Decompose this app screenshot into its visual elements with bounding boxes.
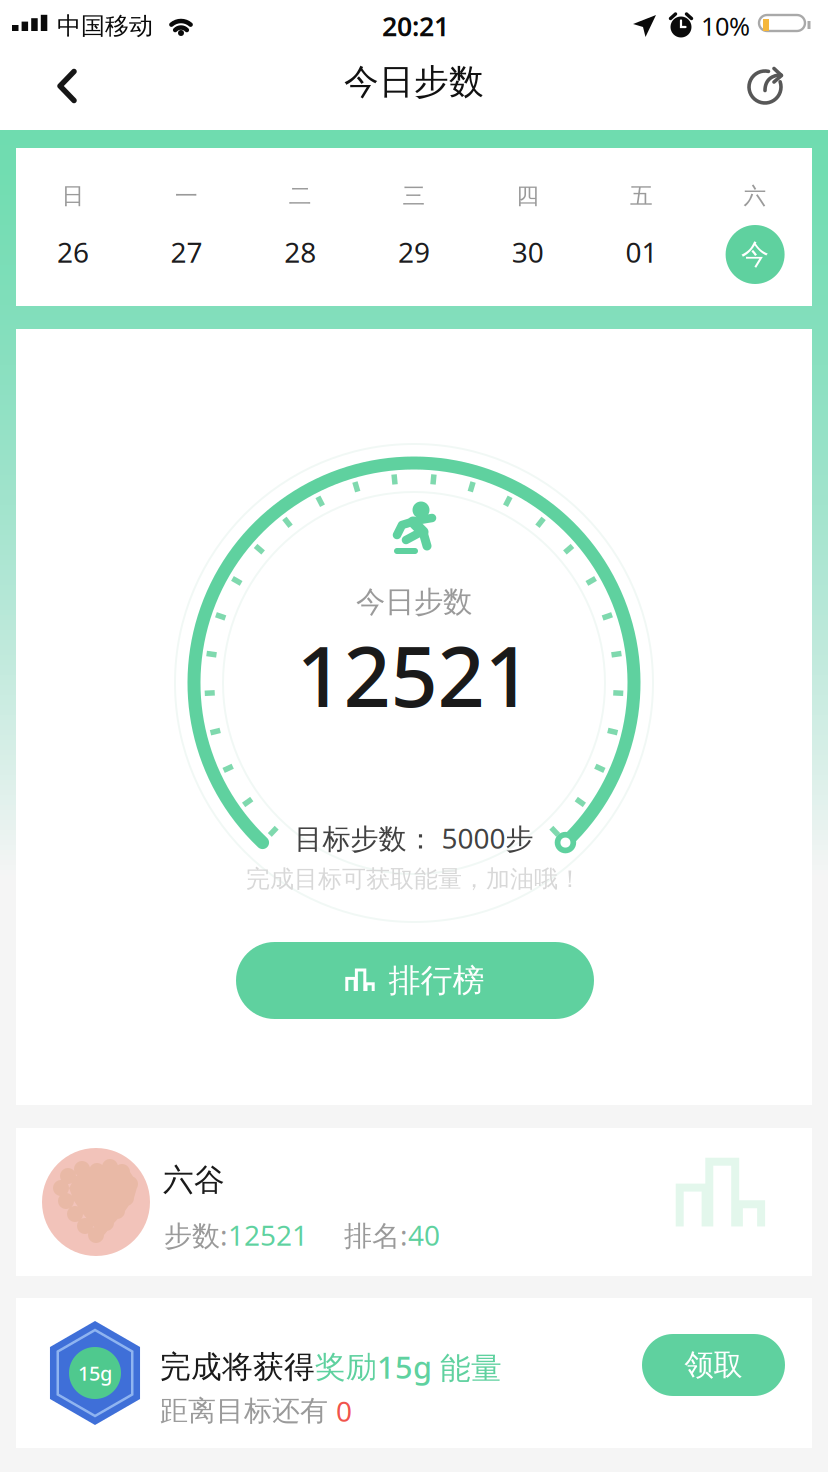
button[interactable]: 三 bbox=[357, 148, 471, 306]
staticText: 日 bbox=[61, 182, 84, 210]
staticText: 29 bbox=[398, 233, 430, 271]
staticText: 今 bbox=[741, 237, 769, 272]
button[interactable]: 领取 bbox=[642, 1334, 785, 1396]
button[interactable]: 六谷 bbox=[16, 1128, 812, 1276]
staticText: 一 bbox=[175, 182, 198, 210]
button[interactable]: 一 bbox=[130, 148, 243, 306]
button[interactable]: 六 bbox=[698, 148, 812, 306]
staticText: 领取 bbox=[684, 1347, 742, 1383]
staticText: 26 bbox=[57, 233, 89, 271]
staticText: 01 bbox=[625, 233, 657, 271]
button[interactable]: Share bbox=[726, 46, 810, 122]
staticText: 步数: bbox=[164, 1216, 228, 1254]
staticText: 完成将获得 bbox=[160, 1348, 315, 1386]
staticText: 20:21 bbox=[382, 8, 449, 44]
staticText: 排名: bbox=[344, 1216, 408, 1254]
button[interactable]: 二 bbox=[243, 148, 357, 306]
staticText: 二 bbox=[289, 182, 312, 210]
staticText: 奖励 bbox=[315, 1348, 377, 1386]
staticText: 15g bbox=[78, 1360, 112, 1386]
staticText: 0 bbox=[336, 1392, 352, 1430]
staticText: 12521 bbox=[296, 620, 531, 730]
staticText: 今日步数 bbox=[356, 584, 472, 620]
staticText: 40 bbox=[408, 1216, 440, 1254]
staticText: 30 bbox=[512, 233, 544, 271]
staticText: 五 bbox=[630, 182, 653, 210]
staticText: 四 bbox=[516, 182, 539, 210]
staticText: 六谷 bbox=[163, 1161, 225, 1199]
button[interactable]: Back bbox=[25, 48, 109, 124]
button[interactable]: 四 bbox=[471, 148, 584, 306]
staticText: 三 bbox=[402, 182, 425, 210]
staticText: 完成目标可获取能量，加油哦！ bbox=[246, 864, 582, 894]
staticText: 12521 bbox=[228, 1216, 308, 1254]
staticText: 六 bbox=[744, 182, 767, 210]
staticText: 28 bbox=[284, 233, 316, 271]
staticText: 排行榜 bbox=[388, 961, 484, 1000]
staticText: 距离目标还有 bbox=[160, 1394, 336, 1428]
button[interactable]: 日 bbox=[16, 148, 130, 306]
staticText: 今日步数 bbox=[344, 61, 484, 103]
button[interactable]: 排行榜 bbox=[236, 942, 594, 1019]
button[interactable]: 五 bbox=[584, 148, 698, 306]
staticText: 中国移动 bbox=[57, 11, 153, 41]
staticText: 27 bbox=[171, 233, 203, 271]
staticText: 目标步数： 5000步 bbox=[294, 819, 533, 857]
staticText: 15g 能量 bbox=[377, 1347, 502, 1387]
staticText: 10% bbox=[701, 9, 750, 43]
